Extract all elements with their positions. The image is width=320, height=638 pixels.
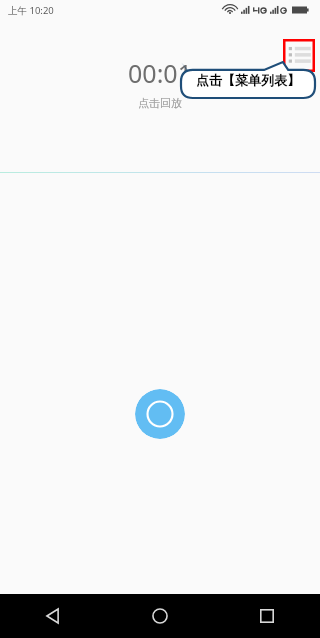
staticText: 点击回放	[138, 96, 182, 110]
button[interactable]: 录制	[135, 389, 185, 439]
staticText: 00:01	[128, 56, 192, 90]
button[interactable]: 点击回放	[138, 96, 182, 110]
staticText: 点击【菜单列表】	[196, 72, 300, 88]
button[interactable]: 菜单列表	[283, 39, 315, 72]
button[interactable]: 最近任务	[213, 594, 320, 638]
button[interactable]: 点击【菜单列表】	[181, 62, 315, 98]
staticText: 上午 10:20	[8, 4, 54, 17]
button[interactable]: 返回	[0, 594, 106, 638]
button[interactable]: 主页	[106, 594, 213, 638]
